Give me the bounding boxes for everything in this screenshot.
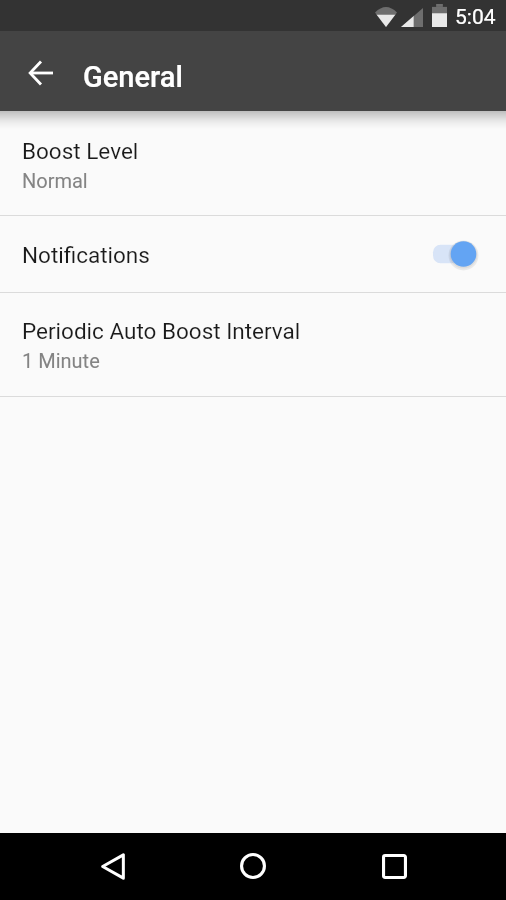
button[interactable]: Recent apps — [370, 842, 418, 890]
button[interactable]: Navigate up — [19, 51, 63, 95]
button[interactable]: Notifications — [0, 216, 506, 292]
staticText: General — [83, 60, 183, 94]
staticText: Boost Level — [22, 138, 139, 164]
button[interactable]: Boost Level — [0, 111, 506, 215]
staticText: 1 Minute — [22, 349, 100, 372]
staticText: Notifications — [22, 242, 150, 268]
staticText: Periodic Auto Boost Interval — [22, 318, 301, 344]
button[interactable]: Home — [229, 842, 277, 890]
button[interactable]: Back — [89, 842, 137, 890]
button[interactable]: Periodic Auto Boost Interval — [0, 293, 506, 396]
staticText: 5:04 — [455, 5, 496, 30]
staticText: Normal — [22, 169, 88, 192]
